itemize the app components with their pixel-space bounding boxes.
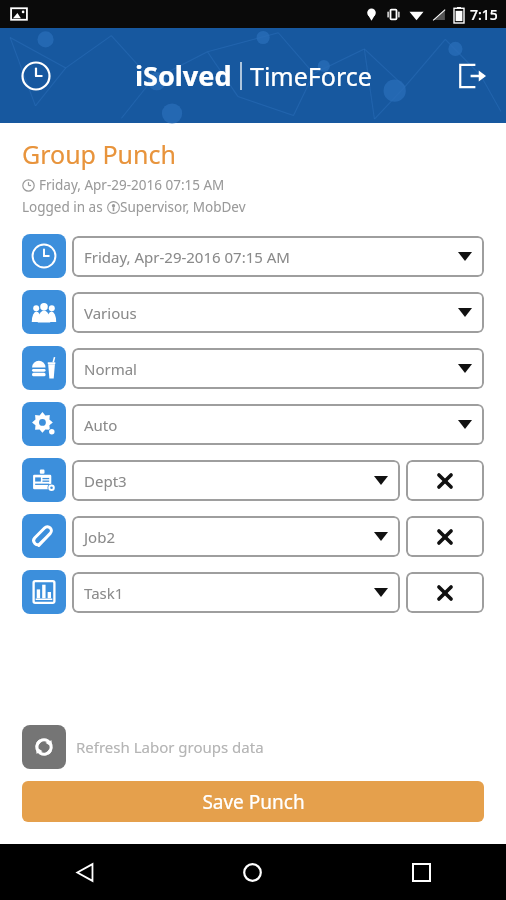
staticText: Supervisor, MobDev: [120, 198, 246, 216]
button[interactable]: Refresh Labor groups data: [22, 725, 506, 769]
button[interactable]: Clear Department: [406, 460, 484, 501]
button[interactable]: Task: [22, 570, 66, 614]
staticText: Group Punch: [22, 137, 176, 171]
staticText: Normal: [84, 359, 458, 379]
button[interactable]: Home: [168, 844, 337, 900]
button[interactable]: Dept3: [72, 460, 400, 501]
staticText: Refresh Labor groups data: [76, 737, 264, 757]
button[interactable]: Clock: [14, 54, 58, 98]
button[interactable]: Mode: [22, 402, 66, 446]
button[interactable]: Back: [0, 844, 168, 900]
staticText: Logged in as: [22, 198, 107, 216]
button[interactable]: Save Punch: [22, 781, 484, 822]
staticText: Various: [84, 303, 458, 323]
button[interactable]: Job: [22, 514, 66, 558]
staticText: iSolved: [135, 57, 232, 94]
staticText: Task1: [84, 583, 374, 603]
button[interactable]: Clear Job: [406, 516, 484, 557]
button[interactable]: Date and time: [22, 234, 66, 278]
button[interactable]: Recent apps: [337, 844, 506, 900]
button[interactable]: Punch type: [22, 346, 66, 390]
button[interactable]: Log out: [450, 54, 494, 98]
button[interactable]: Various: [72, 292, 484, 333]
staticText: Job2: [84, 527, 374, 547]
staticText: Friday, Apr-29-2016 07:15 AM: [39, 176, 225, 194]
staticText: Auto: [84, 415, 458, 435]
button[interactable]: Task1: [72, 572, 400, 613]
staticText: Dept3: [84, 471, 374, 491]
button[interactable]: Job2: [72, 516, 400, 557]
button[interactable]: Normal: [72, 348, 484, 389]
button[interactable]: Department: [22, 458, 66, 502]
button[interactable]: Friday, Apr-29-2016 07:15 AM: [72, 236, 484, 277]
staticText: Save Punch: [202, 789, 305, 815]
staticText: TimeForce: [250, 59, 372, 93]
button[interactable]: Clear Task: [406, 572, 484, 613]
staticText: Friday, Apr-29-2016 07:15 AM: [84, 247, 458, 267]
button[interactable]: Auto: [72, 404, 484, 445]
staticText: 7:15: [470, 5, 498, 24]
button[interactable]: Employees: [22, 290, 66, 334]
